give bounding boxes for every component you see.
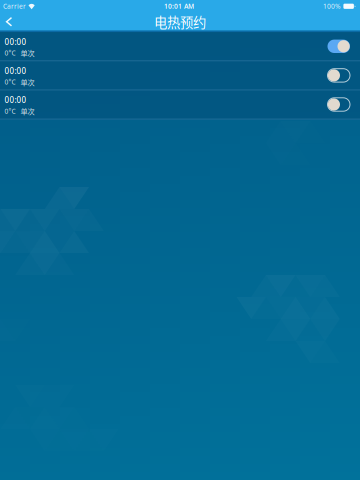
staticText: 单次 [20,48,34,58]
staticText: 0°C [4,48,15,57]
button[interactable]: 00:00 [0,32,360,60]
staticText: 电热预约 [154,12,206,31]
staticText: 00:00 [4,66,26,76]
button[interactable]: Back [0,13,23,31]
staticText: 单次 [20,106,34,116]
staticText: 单次 [20,77,34,87]
staticText: 00:00 [4,36,26,47]
staticText: Carrier [3,2,26,11]
button[interactable]: 00:00 [0,90,360,119]
button[interactable]: 00:00 [0,61,360,90]
staticText: 0°C [4,78,15,86]
staticText: 100% [323,2,341,11]
staticText: 00:00 [4,95,26,105]
staticText: 0°C [4,107,15,116]
staticText: 10:01 AM [164,2,194,11]
